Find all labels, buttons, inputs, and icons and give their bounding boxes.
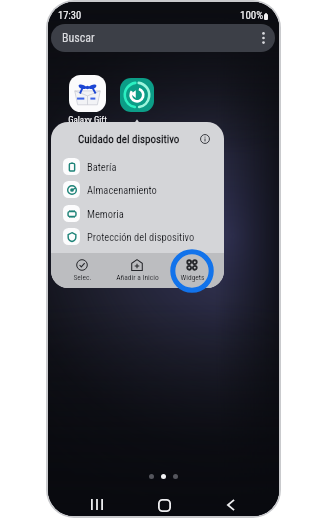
button[interactable]: Protección del dispositivo bbox=[63, 226, 224, 247]
button[interactable]: Almacenamiento bbox=[63, 179, 224, 200]
staticText: Buscar bbox=[62, 31, 95, 45]
staticText: Selec. bbox=[73, 273, 92, 282]
button[interactable]: Device care bbox=[120, 78, 154, 112]
staticText: Protección del dispositivo bbox=[87, 231, 195, 243]
button[interactable]: Galaxy Gift bbox=[61, 75, 113, 126]
button[interactable]: Añadir a Inicio bbox=[110, 253, 164, 288]
staticText: Cuidado del dispositivo bbox=[78, 133, 180, 146]
button[interactable]: Home bbox=[151, 492, 177, 516]
staticText: 17:30 bbox=[58, 9, 82, 21]
staticText: Memoria bbox=[87, 208, 124, 220]
staticText: 100% bbox=[240, 9, 264, 22]
button[interactable]: Batería bbox=[63, 156, 224, 177]
button[interactable]: Recent apps bbox=[84, 491, 110, 516]
staticText: Almacenamiento bbox=[87, 184, 157, 196]
button[interactable]: Memoria bbox=[63, 203, 224, 224]
button[interactable]: Back bbox=[218, 492, 244, 516]
staticText: Batería bbox=[87, 161, 117, 173]
staticText: Galaxy Gift bbox=[68, 115, 107, 126]
button[interactable]: Widgets bbox=[165, 253, 219, 288]
staticText: Añadir a Inicio bbox=[116, 273, 159, 282]
button[interactable]: Buscar bbox=[51, 24, 275, 52]
staticText: Widgets bbox=[180, 273, 205, 282]
button[interactable]: Selec. bbox=[55, 253, 109, 288]
